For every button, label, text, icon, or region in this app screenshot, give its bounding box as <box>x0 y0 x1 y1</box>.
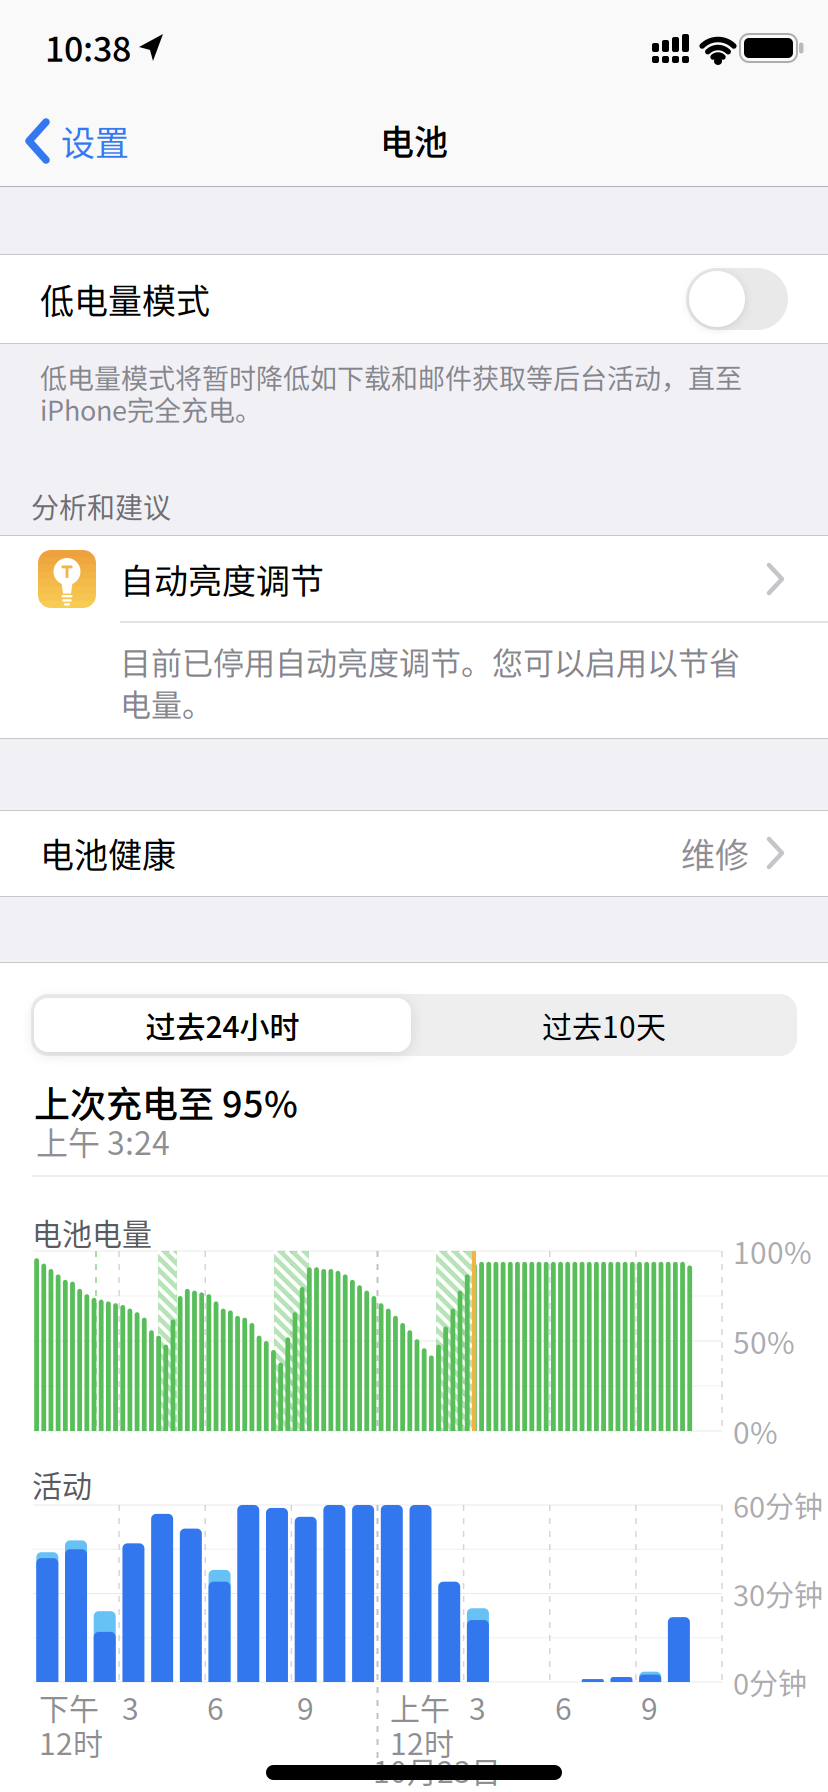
staticText: 上午 <box>390 1685 450 1729</box>
button[interactable]: 低电量模式 <box>686 268 788 330</box>
staticText: 电池电量 <box>32 1210 152 1254</box>
staticText: 目前已停用自动亮度调节。您可以启用以节省 <box>120 639 740 683</box>
staticText: 低电量模式将暂时降低如下载和邮件获取等后台活动，直至 <box>40 357 742 397</box>
staticText: 上午 3:24 <box>36 1118 170 1164</box>
staticText: 6 <box>207 1685 224 1729</box>
staticText: 分析和建议 <box>31 486 171 526</box>
staticText: 电池 <box>380 115 448 165</box>
staticText: 下午 <box>39 1685 99 1729</box>
staticText: 60分钟 <box>733 1484 823 1526</box>
staticText: 6 <box>555 1685 572 1729</box>
staticText: 9 <box>641 1685 658 1729</box>
staticText: 电量。 <box>120 681 213 725</box>
button[interactable]: 过去24小时 <box>34 998 411 1052</box>
staticText: 活动 <box>32 1462 92 1506</box>
staticText: 设置 <box>61 116 129 166</box>
button[interactable]: 返回设置 <box>20 106 144 176</box>
staticText: 自动亮度调节 <box>120 554 324 604</box>
staticText: 12时 <box>39 1720 103 1764</box>
staticText: 低电量模式 <box>40 274 210 324</box>
staticText: 0分钟 <box>733 1661 807 1703</box>
button[interactable]: 过去10天 <box>414 998 794 1052</box>
staticText: 50% <box>733 1319 795 1363</box>
staticText: 100% <box>733 1229 812 1273</box>
staticText: 10:38 <box>45 22 131 72</box>
staticText: 3 <box>122 1685 139 1729</box>
staticText: 过去24小时 <box>145 1003 299 1047</box>
button[interactable]: 自动亮度调节 <box>0 536 828 622</box>
staticText: 过去10天 <box>542 1003 666 1047</box>
staticText: 9 <box>297 1685 314 1729</box>
button[interactable]: 电池健康 <box>0 811 828 896</box>
staticText: 30分钟 <box>733 1572 823 1614</box>
staticText: 3 <box>469 1685 486 1729</box>
staticText: 维修 <box>681 828 749 878</box>
staticText: 12时 <box>390 1720 454 1764</box>
staticText: 10月23日 <box>373 1748 501 1792</box>
staticText: iPhone完全充电。 <box>40 389 262 429</box>
staticText: 电池健康 <box>40 828 176 878</box>
staticText: 0% <box>733 1409 778 1453</box>
staticText: 上次充电至 95% <box>34 1076 298 1128</box>
